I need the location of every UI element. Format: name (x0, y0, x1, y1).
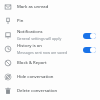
other: Hide conversation (4, 73, 12, 81)
button[interactable]: Notifications (0, 28, 100, 42)
other: Mark as unread (4, 3, 12, 11)
staticText: General settings will apply (17, 36, 62, 41)
staticText: Delete conversation (17, 88, 58, 94)
other: Delete conversation (4, 87, 12, 95)
staticText: History is on (17, 43, 42, 49)
button[interactable]: Mark as unread (0, 0, 100, 14)
other: Block and report (4, 59, 12, 67)
staticText: Mark as unread (17, 4, 49, 10)
button[interactable]: Hide conversation (0, 70, 100, 84)
button[interactable]: Block and report (0, 56, 100, 70)
other: Notifications (4, 31, 12, 39)
button[interactable]: History (0, 42, 100, 56)
other: History (4, 45, 12, 53)
other: Pin (4, 17, 12, 25)
button[interactable]: Notifications toggle (83, 32, 96, 39)
staticText: Hide conversation (17, 74, 54, 80)
staticText: Pin (17, 18, 24, 24)
button[interactable]: Pin (0, 14, 100, 28)
staticText: Notifications (17, 29, 43, 35)
staticText: Messages sent now are saved (17, 50, 68, 55)
button[interactable]: Delete conversation (0, 84, 100, 98)
button[interactable]: History is on toggle (83, 46, 96, 53)
staticText: Block & Report (17, 60, 47, 66)
